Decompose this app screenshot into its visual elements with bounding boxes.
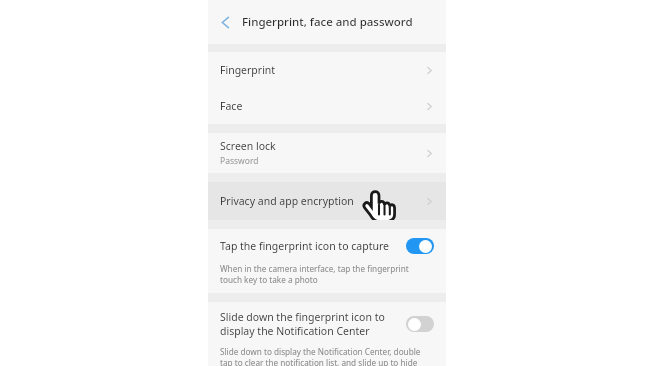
button[interactable]: Toggle off <box>406 316 434 332</box>
staticText: Screen lock <box>220 139 276 153</box>
staticText: Fingerprint <box>220 63 276 77</box>
button[interactable]: Back <box>208 5 242 39</box>
button[interactable]: Tap the fingerprint icon to capture <box>208 229 446 263</box>
staticText: Fingerprint, face and password <box>242 14 413 30</box>
staticText: Face <box>220 99 243 113</box>
button[interactable]: Privacy and app encryption <box>208 182 446 220</box>
staticText: Password <box>220 155 259 167</box>
button[interactable]: Fingerprint <box>208 52 446 88</box>
staticText: When in the camera interface, tap the fi… <box>220 263 430 285</box>
staticText: Slide down to display the Notification C… <box>220 346 432 366</box>
staticText: Slide down the fingerprint icon to displ… <box>220 310 390 338</box>
button[interactable]: Slide down the fingerprint icon to displ… <box>208 302 446 342</box>
button[interactable]: Face <box>208 88 446 124</box>
staticText: Tap the fingerprint icon to capture <box>220 239 389 253</box>
button[interactable]: Toggle on <box>406 238 434 254</box>
button[interactable]: Screen lock <box>208 133 446 173</box>
staticText: Privacy and app encryption <box>220 194 354 208</box>
